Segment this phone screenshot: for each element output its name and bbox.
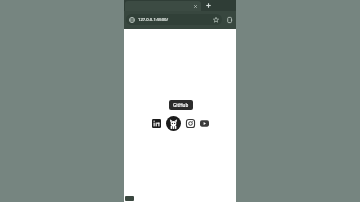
button[interactable]: Close tab — [125, 1, 201, 11]
button[interactable]: Instagram — [186, 119, 195, 128]
button[interactable]: Browser menu — [225, 15, 234, 24]
button[interactable]: Status — [125, 196, 134, 201]
button[interactable]: Close tab — [193, 4, 198, 9]
button[interactable]: LinkedIn — [152, 119, 161, 128]
button[interactable]: Bookmark this page — [213, 17, 219, 23]
button[interactable]: New tab — [205, 2, 212, 9]
button[interactable]: YouTube — [200, 119, 209, 128]
button[interactable]: 127.0.0.1:5500/index.html — [126, 14, 222, 25]
button[interactable]: GitHub — [166, 116, 181, 131]
staticText: 127.0.0.1:5500/index.html — [138, 17, 175, 23]
staticText: GitHub — [173, 102, 189, 108]
